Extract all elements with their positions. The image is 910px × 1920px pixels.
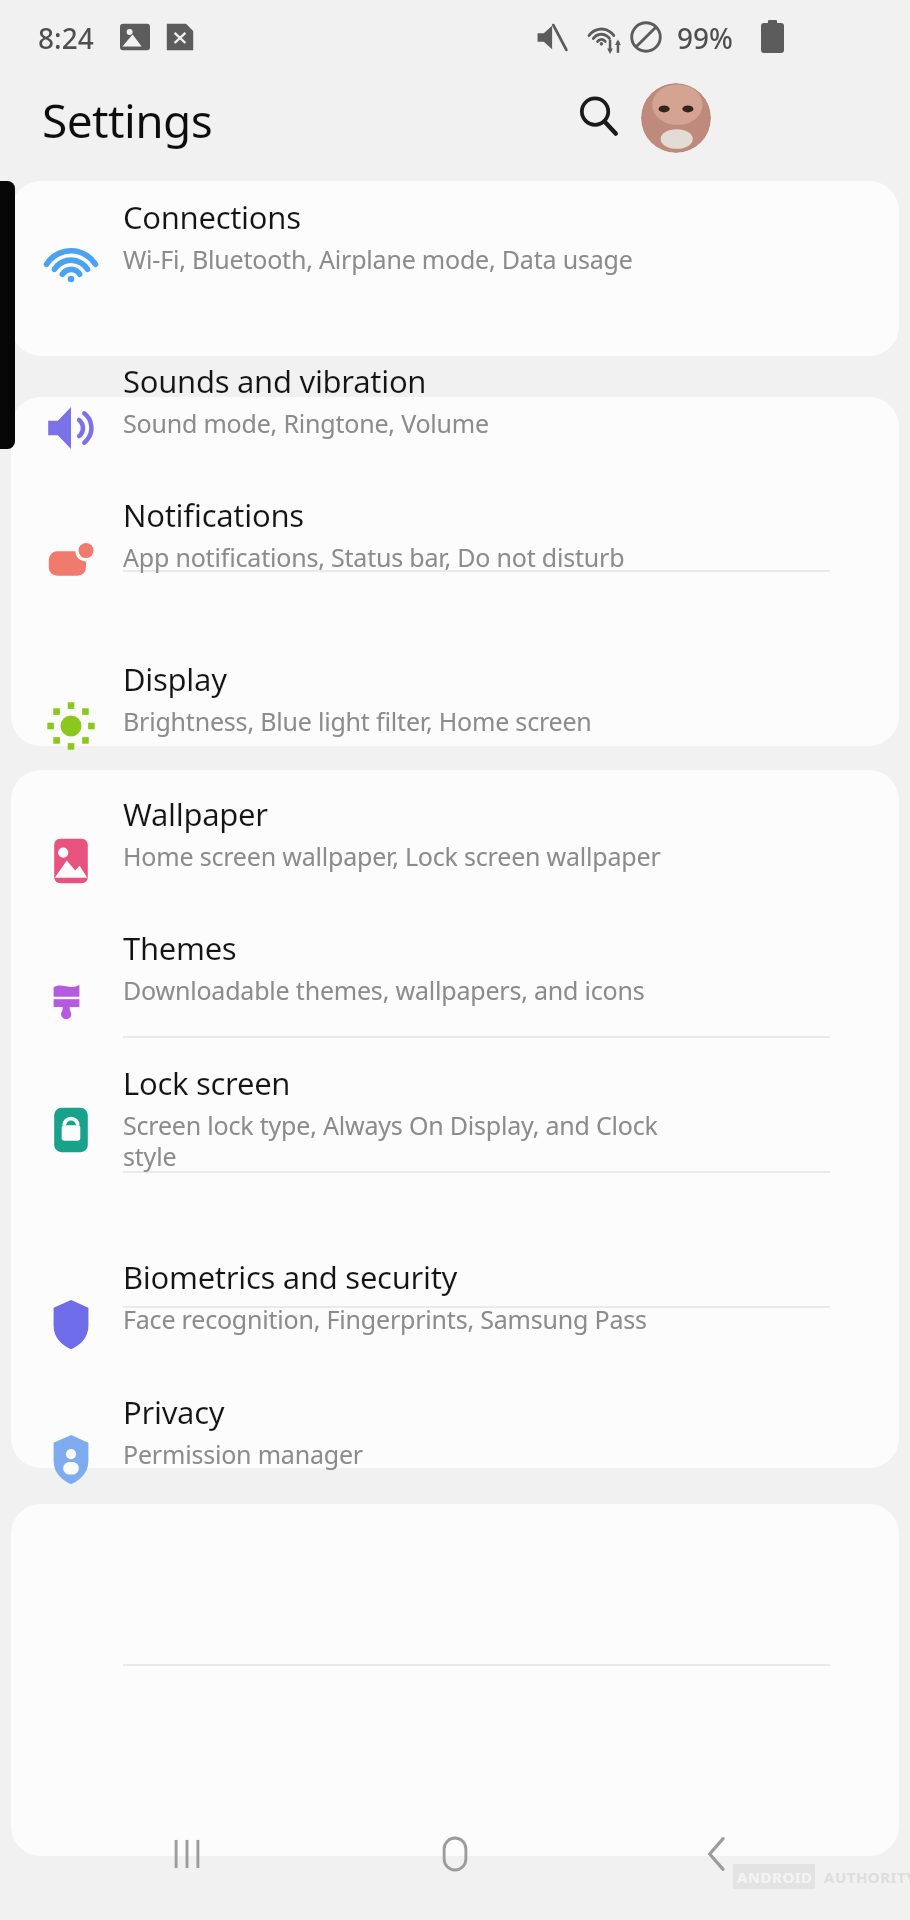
button[interactable]: Profile: [641, 83, 711, 153]
staticText: Biometrics and security: [123, 1256, 458, 1298]
button[interactable]: [11, 1664, 899, 1856]
staticText: Wi-Fi, Bluetooth, Airplane mode, Data us…: [123, 242, 633, 276]
staticText: Face recognition, Fingerprints, Samsung …: [123, 1302, 647, 1336]
staticText: AUTHORITY: [824, 1867, 910, 1887]
staticText: Display: [123, 658, 227, 700]
button[interactable]: [11, 181, 899, 356]
staticText: Notifications: [123, 494, 304, 536]
staticText: 99%: [677, 19, 733, 57]
other: Wi-Fi: [587, 19, 623, 55]
staticText: Connections: [123, 196, 301, 238]
staticText: Wallpaper: [123, 793, 268, 835]
button[interactable]: [11, 1036, 899, 1171]
staticText: Privacy: [123, 1391, 225, 1433]
staticText: Lock screen: [123, 1062, 291, 1104]
button[interactable]: [11, 1306, 899, 1468]
staticText: Permission manager: [123, 1437, 363, 1471]
button[interactable]: Back: [686, 1822, 750, 1886]
button[interactable]: [11, 570, 899, 746]
button[interactable]: Search: [577, 94, 621, 138]
staticText: Settings: [42, 89, 213, 152]
other: Do not disturb: [629, 20, 663, 54]
button[interactable]: Home: [423, 1822, 487, 1886]
staticText: Home screen wallpaper, Lock screen wallp…: [123, 839, 661, 873]
staticText: Sound mode, Ringtone, Volume: [123, 406, 489, 440]
staticText: Brightness, Blue light filter, Home scre…: [123, 704, 592, 738]
staticText: ANDROID: [737, 1867, 813, 1887]
button[interactable]: [11, 1171, 899, 1306]
staticText: Downloadable themes, wallpapers, and ico…: [123, 973, 645, 1007]
staticText: 8:24: [38, 19, 94, 57]
staticText: App notifications, Status bar, Do not di…: [123, 540, 625, 574]
staticText: Themes: [123, 927, 237, 969]
staticText: style: [123, 1139, 177, 1173]
button[interactable]: [11, 770, 899, 1036]
other: Sound muted: [536, 22, 567, 53]
button[interactable]: Recents: [155, 1822, 219, 1886]
button[interactable]: [11, 397, 899, 570]
staticText: Sounds and vibration: [123, 360, 427, 402]
staticText: Screen lock type, Always On Display, and…: [123, 1108, 658, 1142]
